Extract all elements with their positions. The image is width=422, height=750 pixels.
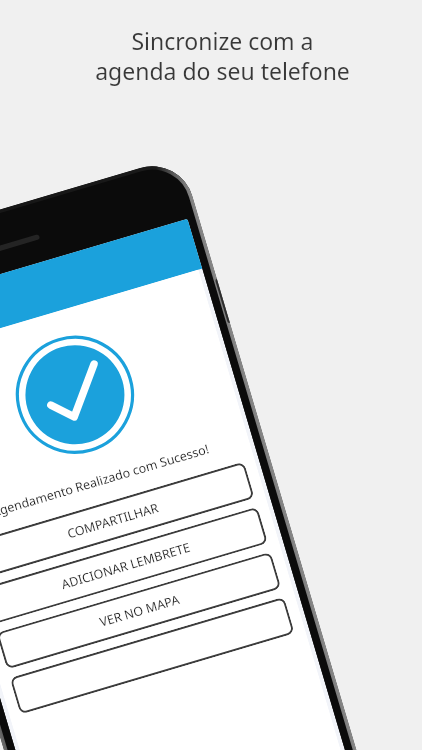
staticText: ADICIONAR LEMBRETE (59, 539, 192, 593)
button[interactable]: VER NO MAPA (0, 552, 281, 669)
button[interactable]: COMPARTILHAR (0, 462, 255, 579)
staticText: Sincronize com a agenda do seu telefone (95, 25, 350, 87)
staticText: VER NO MAPA (97, 591, 182, 631)
staticText: Agendamento Realizado com Sucesso! (0, 440, 211, 521)
button[interactable]: Conclusão (0, 219, 202, 358)
button[interactable]: Ação (10, 597, 295, 714)
staticText: COMPARTILHAR (65, 499, 161, 542)
button[interactable]: ADICIONAR LEMBRETE (0, 507, 268, 624)
